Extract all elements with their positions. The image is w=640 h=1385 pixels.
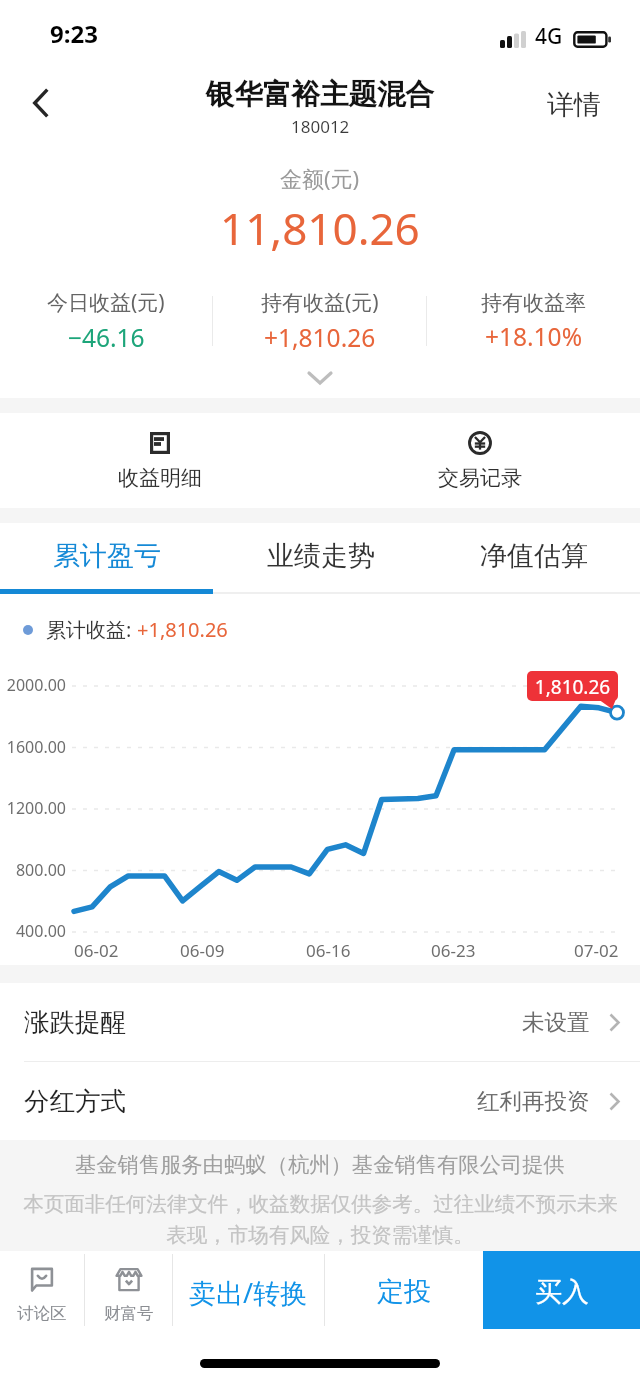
staticText: 交易记录 (438, 465, 522, 491)
button[interactable]: 分红方式 (0, 1062, 640, 1140)
button[interactable]: 收益明细 (0, 413, 320, 508)
staticText: 分红方式 (24, 1085, 126, 1117)
staticText: 06-23 (431, 939, 476, 962)
button[interactable]: 详情 (537, 77, 611, 131)
button[interactable]: Expand details (0, 365, 640, 391)
staticText: 累计收益: (46, 616, 137, 643)
button[interactable]: 业绩走势 (214, 523, 427, 594)
staticText: 涨跌提醒 (24, 1006, 126, 1038)
staticText: 定投 (377, 1275, 431, 1309)
staticText: 今日收益(元) (47, 288, 165, 317)
staticText: 180012 (291, 115, 350, 138)
staticText: 1200.00 (6, 797, 66, 819)
staticText: 业绩走势 (267, 539, 375, 573)
staticText: 06-16 (306, 939, 351, 962)
staticText: 2000.00 (6, 674, 66, 696)
button[interactable]: 定投 (325, 1251, 483, 1329)
button[interactable]: 卖出/转换 (173, 1251, 324, 1329)
staticText: 9:23 (50, 17, 98, 50)
staticText: 未设置 (522, 1008, 590, 1036)
button[interactable]: Back (12, 74, 70, 132)
staticText: 基金销售服务由蚂蚁（杭州）基金销售有限公司提供 (75, 1151, 565, 1178)
staticText: 财富号 (104, 1303, 154, 1324)
staticText: 1600.00 (6, 736, 66, 758)
staticText: 表现，市场有风险，投资需谨慎。 (166, 1222, 474, 1248)
staticText: 本页面非任何法律文件，收益数据仅供参考。过往业绩不预示未来 (23, 1191, 618, 1217)
staticText: 详情 (547, 88, 601, 122)
staticText: 金额(元) (280, 163, 360, 193)
staticText: −46.16 (68, 321, 145, 354)
staticText: 06-09 (180, 939, 225, 962)
staticText: +1,810.26 (264, 321, 376, 354)
staticText: 1,810.26 (527, 674, 618, 700)
staticText: 红利再投资 (477, 1087, 590, 1115)
staticText: 4G (535, 22, 563, 51)
staticText: 买入 (535, 1275, 589, 1309)
button[interactable]: 交易记录 (320, 413, 640, 508)
staticText: 累计盈亏 (53, 539, 161, 573)
staticText: 06-02 (74, 939, 119, 962)
button[interactable]: 财富号 (85, 1251, 172, 1329)
button[interactable]: 涨跌提醒 (0, 983, 640, 1061)
button[interactable]: 累计盈亏 (0, 523, 214, 594)
staticText: 400.00 (15, 920, 66, 942)
staticText: 持有收益率 (481, 290, 586, 316)
button[interactable]: 净值估算 (427, 523, 640, 594)
button[interactable]: 买入 (483, 1251, 640, 1329)
staticText: 800.00 (15, 859, 66, 881)
staticText: 银华富裕主题混合 (206, 77, 434, 113)
staticText: 净值估算 (480, 539, 588, 573)
staticText: 卖出/转换 (189, 1274, 308, 1311)
staticText: 07-02 (574, 939, 619, 962)
staticText: 讨论区 (17, 1303, 67, 1324)
staticText: 11,810.26 (220, 198, 420, 258)
staticText: 持有收益(元) (261, 288, 379, 317)
staticText: +18.10% (485, 320, 582, 353)
staticText: 收益明细 (118, 465, 202, 491)
button[interactable]: 讨论区 (0, 1251, 84, 1329)
staticText: +1,810.26 (137, 616, 228, 643)
